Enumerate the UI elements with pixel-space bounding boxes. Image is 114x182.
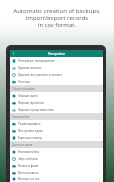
staticText: Удалить записи — [18, 66, 42, 70]
staticText: Формат представления — [18, 108, 54, 112]
staticText: Уведомления — [12, 115, 30, 119]
staticText: Напоминания — [18, 150, 40, 154]
button[interactable]: Формат представления — [10, 106, 103, 113]
button[interactable]: Back — [10, 50, 17, 57]
button[interactable]: Редактировать — [10, 120, 103, 127]
button[interactable]: Удалить записи — [10, 64, 103, 71]
button[interactable]: Копия в файл — [10, 162, 103, 169]
button[interactable]: Резервное копирование — [10, 57, 103, 64]
staticText: Удалить все данные и записи — [18, 73, 63, 77]
button[interactable]: Экспорт — [10, 78, 103, 85]
staticText: Формат времени — [18, 101, 44, 105]
staticText: Формат даты — [18, 94, 38, 98]
button[interactable]: Напоминания — [10, 148, 103, 155]
staticText: Настройка звука — [18, 129, 43, 133]
staticText: Звук сигнала — [18, 157, 38, 161]
button[interactable]: Восстановить — [10, 169, 103, 176]
staticText: Единицы измер. — [18, 136, 43, 140]
button[interactable]: Настройка звука — [10, 127, 103, 134]
staticText: Экспорт — [18, 80, 31, 84]
button[interactable]: Импорт из csv — [10, 176, 103, 182]
button[interactable]: Единицы измер. — [10, 134, 103, 141]
staticText: Редактировать — [18, 122, 41, 126]
button[interactable]: Формат даты — [10, 92, 103, 99]
staticText: Восстановить — [18, 171, 39, 175]
staticText: Настройки — [48, 52, 65, 56]
button[interactable]: Удалить все данные и записи — [10, 71, 103, 78]
button[interactable]: Звук сигнала — [10, 155, 103, 162]
staticText: Импорт из csv — [18, 177, 40, 181]
staticText: Копия в файл — [18, 164, 39, 168]
staticText: Данные и архив — [12, 143, 33, 147]
button[interactable]: Формат времени — [10, 99, 103, 106]
staticText: Общие настройки — [12, 87, 35, 91]
staticText: Automatic creation of backups, import/ex… — [13, 7, 101, 29]
staticText: Резервное копирование — [18, 59, 55, 63]
